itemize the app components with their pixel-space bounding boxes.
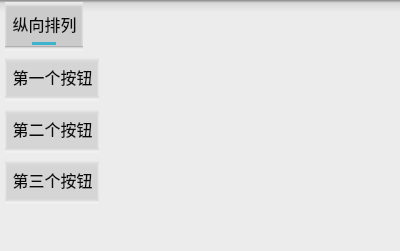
button[interactable]: 纵向排列 (5, 2, 83, 52)
staticText: 第一个按钮 (12, 65, 93, 88)
button[interactable]: 第一个按钮 (5, 57, 99, 102)
staticText: 第三个按钮 (12, 168, 93, 191)
staticText: 纵向排列 (12, 12, 77, 35)
staticText: 第二个按钮 (12, 117, 93, 140)
button[interactable]: 第三个按钮 (5, 160, 99, 205)
button[interactable]: 第二个按钮 (5, 109, 99, 154)
